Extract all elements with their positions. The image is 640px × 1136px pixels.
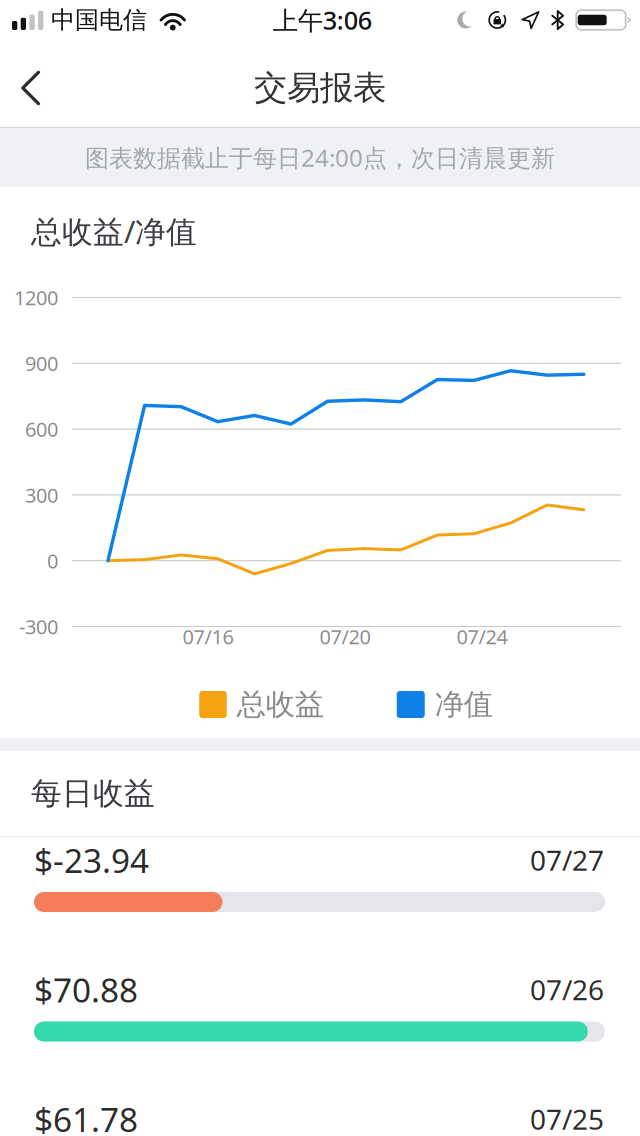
staticText: 07/16 — [182, 623, 233, 650]
button[interactable]: $-23.94 — [0, 837, 640, 966]
staticText: 600 — [25, 416, 58, 442]
staticText: 净值 — [435, 686, 493, 722]
staticText: 07/26 — [530, 971, 604, 1008]
staticText: $70.88 — [34, 967, 138, 1012]
staticText: 图表数据截止于每日24:00点，次日清晨更新 — [85, 142, 555, 173]
staticText: 07/25 — [530, 1100, 604, 1136]
staticText: 900 — [25, 350, 58, 377]
staticText: 交易报表 — [254, 67, 386, 108]
staticText: 300 — [25, 482, 58, 508]
staticText: $61.78 — [34, 1097, 138, 1136]
staticText: $-23.94 — [34, 838, 149, 882]
staticText: -300 — [19, 613, 58, 640]
staticText: 上午3:06 — [273, 3, 372, 37]
staticText: 总收益/净值 — [31, 211, 197, 251]
button[interactable]: $61.78 — [0, 1096, 640, 1136]
staticText: 中国电信 — [51, 5, 147, 35]
staticText: 1200 — [14, 284, 58, 311]
staticText: 07/27 — [530, 841, 604, 879]
staticText: 总收益 — [237, 686, 324, 722]
staticText: 每日收益 — [31, 775, 155, 812]
button[interactable]: Back — [0, 48, 60, 128]
staticText: 07/20 — [319, 623, 370, 650]
staticText: 0 — [47, 547, 58, 574]
staticText: 07/24 — [456, 623, 507, 650]
button[interactable]: $70.88 — [0, 966, 640, 1096]
